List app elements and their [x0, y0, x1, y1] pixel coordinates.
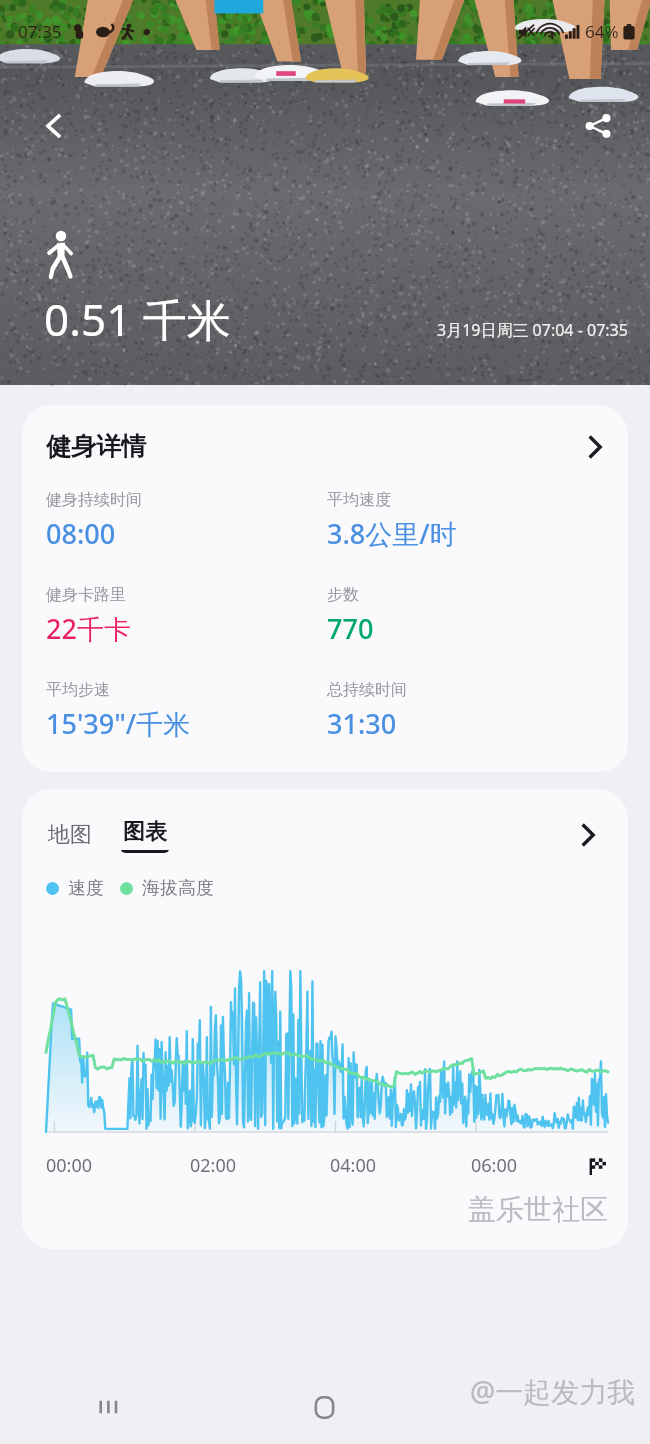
staticText: 地图: [48, 821, 92, 849]
staticText: 22千卡: [46, 610, 131, 647]
staticText: 00:00: [46, 1153, 93, 1178]
staticText: 图表: [123, 818, 167, 846]
staticText: 健身卡路里: [46, 585, 126, 605]
staticText: 770: [327, 610, 374, 647]
button[interactable]: Back: [433, 1370, 650, 1444]
button[interactable]: Home: [216, 1370, 433, 1444]
staticText: @一起发力我: [470, 1372, 636, 1410]
staticText: 06:00: [471, 1153, 518, 1178]
staticText: 3月19日周三 07:04 - 07:35: [437, 319, 628, 341]
button[interactable]: 健身详情: [22, 405, 628, 772]
button[interactable]: Open chart details: [568, 815, 608, 855]
staticText: 健身持续时间: [46, 490, 142, 510]
staticText: 07:35: [18, 20, 62, 43]
staticText: 31:30: [327, 705, 397, 742]
staticText: 平均速度: [327, 490, 391, 510]
staticText: 04:00: [330, 1153, 377, 1178]
button[interactable]: Share: [572, 100, 624, 152]
staticText: 海拔高度: [142, 877, 214, 900]
staticText: 平均步速: [46, 680, 110, 700]
staticText: 3.8公里/时: [327, 515, 457, 552]
button[interactable]: Back: [28, 100, 80, 152]
button[interactable]: 地图: [46, 819, 94, 851]
staticText: 02:00: [190, 1153, 237, 1178]
staticText: 盖乐世社区: [468, 1192, 608, 1227]
staticText: 15'39"/千米: [46, 705, 191, 742]
staticText: 健身详情: [46, 431, 146, 462]
staticText: 08:00: [46, 515, 116, 552]
staticText: 64%: [585, 20, 619, 43]
staticText: 0.51 千米: [44, 289, 231, 349]
button[interactable]: 图表: [120, 818, 170, 853]
button[interactable]: Recent apps: [0, 1370, 216, 1444]
staticText: 步数: [327, 585, 359, 605]
staticText: 速度: [68, 877, 104, 900]
staticText: 总持续时间: [327, 680, 407, 700]
